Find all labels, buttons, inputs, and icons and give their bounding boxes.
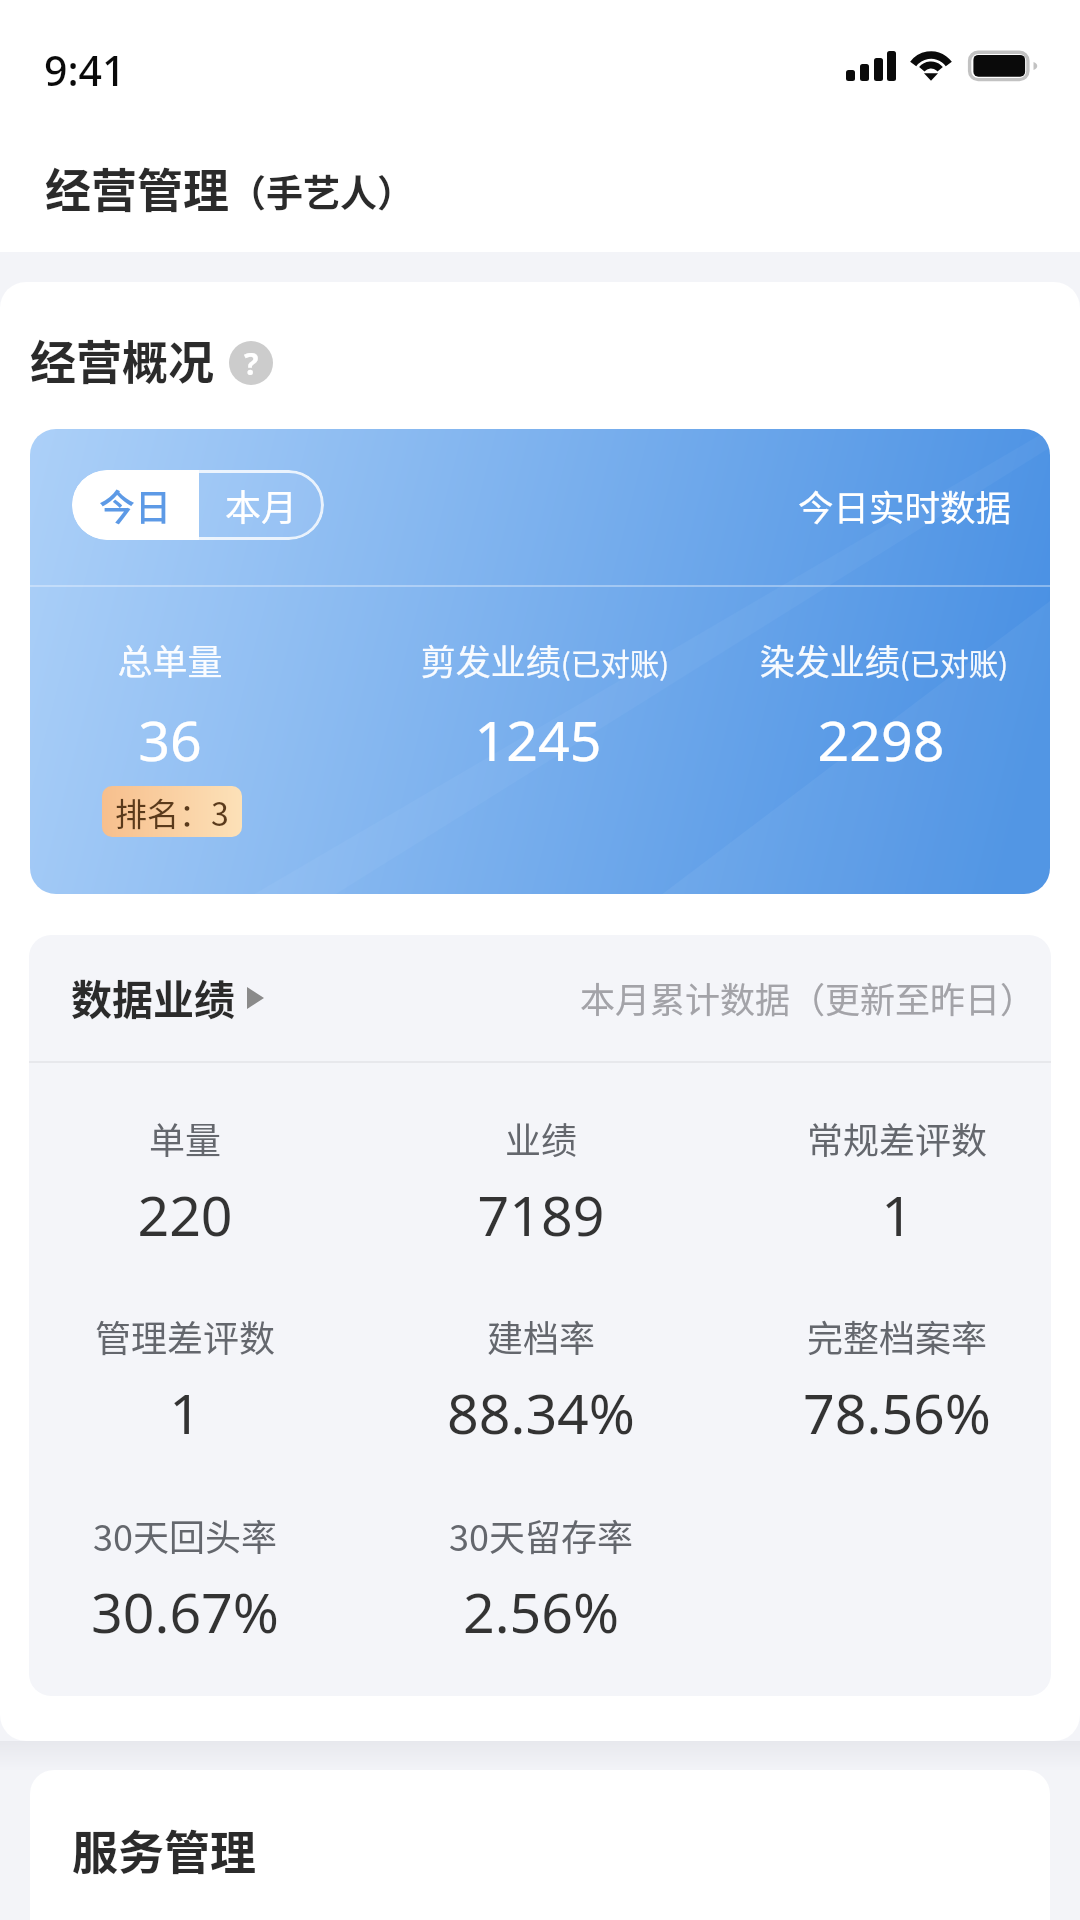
- staticText: 业绩: [241, 1112, 841, 1164]
- staticText: 2298: [581, 702, 1050, 778]
- staticText: 2.56%: [241, 1574, 841, 1650]
- staticText: 完整档案率: [597, 1310, 1051, 1362]
- staticText: 7189: [241, 1177, 841, 1253]
- staticText: 36: [30, 702, 470, 778]
- staticText: ?: [244, 343, 259, 384]
- button[interactable]: 排名：3: [102, 786, 242, 837]
- staticText: 总单量: [30, 634, 470, 685]
- staticText: 今日: [99, 479, 172, 531]
- button[interactable]: 本月: [199, 470, 324, 540]
- staticText: 9:41: [44, 42, 244, 98]
- staticText: 数据业绩: [71, 967, 301, 1026]
- staticText: 30天回头率: [29, 1509, 485, 1561]
- staticText: 常规差评数: [597, 1112, 1051, 1164]
- staticText: 染发业绩(已对账): [584, 634, 1050, 685]
- staticText: 经营管理（手艺人）: [45, 154, 745, 221]
- staticText: 经营概况: [30, 326, 430, 393]
- button[interactable]: 帮助: [229, 341, 273, 385]
- staticText: 88.34%: [241, 1375, 841, 1451]
- staticText: 30天留存率: [241, 1509, 841, 1561]
- staticText: 本月: [225, 479, 298, 531]
- staticText: 220: [29, 1177, 485, 1253]
- staticText: 排名：3: [115, 789, 229, 835]
- staticText: 剪发业绩(已对账): [245, 634, 845, 685]
- staticText: 单量: [29, 1112, 485, 1164]
- button[interactable]: 今日: [72, 470, 199, 540]
- staticText: 78.56%: [597, 1375, 1051, 1451]
- staticText: 1245: [238, 702, 838, 778]
- button[interactable]: 数据业绩: [71, 955, 301, 1031]
- staticText: 建档率: [241, 1310, 841, 1362]
- staticText: 本月累计数据（更新至昨日）: [435, 972, 1035, 1023]
- staticText: 今日实时数据: [411, 480, 1011, 531]
- staticText: 服务管理: [72, 1816, 472, 1883]
- staticText: 管理差评数: [29, 1310, 485, 1362]
- staticText: 1: [29, 1375, 485, 1451]
- staticText: 30.67%: [29, 1574, 485, 1650]
- staticText: 1: [597, 1177, 1051, 1253]
